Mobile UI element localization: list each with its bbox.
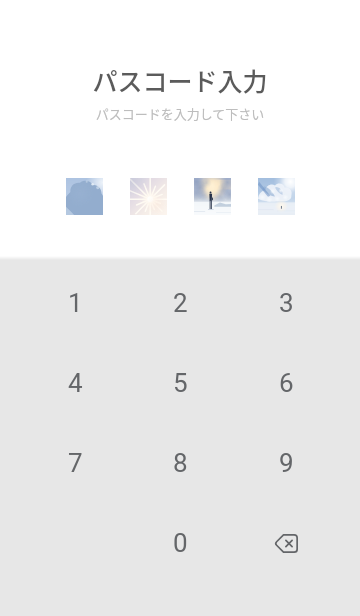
button[interactable]: 8 bbox=[148, 431, 212, 495]
staticText: 7 bbox=[68, 448, 83, 478]
button[interactable]: 9 bbox=[254, 431, 318, 495]
button[interactable]: 6 bbox=[254, 351, 318, 415]
button[interactable]: Theme preview 2 bbox=[130, 178, 167, 215]
staticText: 2 bbox=[173, 288, 188, 318]
staticText: 9 bbox=[279, 448, 294, 478]
staticText: 8 bbox=[173, 448, 188, 478]
staticText: パスコード入力 bbox=[0, 62, 360, 98]
button[interactable]: 2 bbox=[148, 271, 212, 335]
staticText: 5 bbox=[173, 368, 188, 398]
staticText: 1 bbox=[68, 288, 83, 318]
staticText: パスコードを入力して下さい bbox=[0, 104, 360, 123]
button[interactable]: 0 bbox=[148, 511, 212, 575]
staticText: 0 bbox=[173, 528, 188, 558]
button[interactable]: Theme preview 1 bbox=[66, 178, 103, 215]
button[interactable]: Theme preview 3 bbox=[194, 178, 231, 215]
button[interactable]: 4 bbox=[43, 351, 107, 415]
staticText: 3 bbox=[279, 288, 294, 318]
button[interactable]: 1 bbox=[43, 271, 107, 335]
button[interactable]: Theme preview 4 bbox=[258, 178, 295, 215]
button[interactable]: 7 bbox=[43, 431, 107, 495]
button[interactable]: 3 bbox=[254, 271, 318, 335]
staticText: 4 bbox=[68, 368, 83, 398]
staticText: 6 bbox=[279, 368, 294, 398]
button[interactable]: 5 bbox=[148, 351, 212, 415]
button[interactable]: Delete bbox=[254, 511, 318, 575]
